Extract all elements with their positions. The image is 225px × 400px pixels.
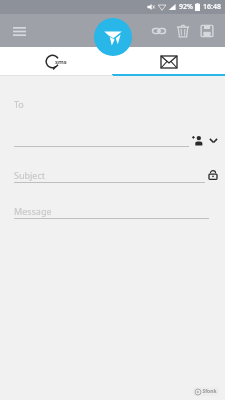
staticText: 16:48 (203, 2, 221, 12)
button[interactable]: Save (195, 19, 219, 43)
button[interactable]: Encrypt (205, 167, 221, 183)
staticText: sms (55, 58, 67, 66)
button[interactable]: Delete (171, 19, 195, 43)
button[interactable]: Email tab (112, 47, 225, 76)
button[interactable]: SMS tab (0, 47, 112, 76)
button[interactable]: Message (0, 203, 225, 219)
button[interactable]: Send (94, 18, 132, 56)
staticText: 92% (179, 2, 193, 12)
button[interactable]: Add contact (0, 133, 225, 147)
staticText: Sfonk (202, 388, 217, 395)
button[interactable]: Expand recipients (205, 133, 221, 147)
staticText: Subject (14, 169, 46, 181)
button[interactable]: Add contact (189, 133, 205, 147)
button[interactable]: Menu (8, 20, 30, 42)
button[interactable]: Attach (147, 19, 171, 43)
staticText: Message (14, 205, 52, 217)
button[interactable]: Subject (0, 167, 225, 183)
staticText: To (14, 98, 24, 110)
